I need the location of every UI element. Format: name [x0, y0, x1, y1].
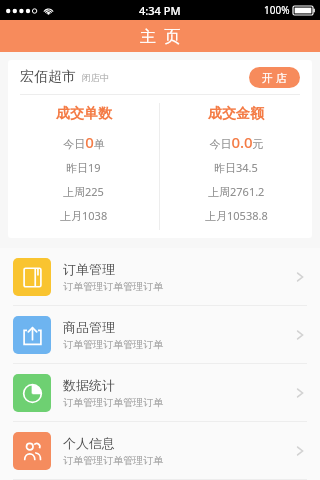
staticText: 订单管理订单管理订单	[63, 338, 163, 351]
staticText: 上周225	[63, 184, 104, 199]
staticText: 订单管理订单管理订单	[63, 280, 163, 293]
staticText: 主 页	[140, 25, 181, 47]
staticText: 4:34 PM	[139, 3, 181, 18]
button[interactable]: 个人信息	[0, 422, 320, 479]
button[interactable]: 开 店	[249, 67, 300, 88]
staticText: 今日0.0元	[209, 132, 264, 152]
staticText: 闭店中	[82, 72, 109, 83]
staticText: 今日0单	[63, 132, 105, 152]
staticText: 上月10538.8	[205, 208, 268, 223]
staticText: 宏佰超市	[20, 68, 76, 86]
button[interactable]: 商品管理	[0, 306, 320, 363]
staticText: 开 店	[262, 70, 287, 85]
staticText: 昨日19	[66, 160, 101, 175]
staticText: 订单管理订单管理订单	[63, 396, 163, 409]
other: 订单管理	[293, 270, 307, 284]
staticText: 个人信息	[63, 435, 115, 451]
staticText: 昨日34.5	[214, 160, 258, 175]
staticText: 数据统计	[63, 377, 115, 393]
other: 商品管理	[293, 328, 307, 342]
button[interactable]: 订单管理	[0, 248, 320, 305]
staticText: 商品管理	[63, 319, 115, 335]
other: 个人信息	[293, 444, 307, 458]
staticText: 订单管理	[63, 261, 115, 277]
staticText: 上月1038	[60, 208, 108, 223]
staticText: 上周2761.2	[208, 184, 265, 199]
staticText: 100%	[264, 3, 290, 17]
staticText: 成交金额	[208, 105, 264, 123]
button[interactable]: 数据统计	[0, 364, 320, 421]
staticText: 订单管理订单管理订单	[63, 454, 163, 467]
other: 数据统计	[293, 386, 307, 400]
staticText: 成交单数	[56, 105, 112, 123]
